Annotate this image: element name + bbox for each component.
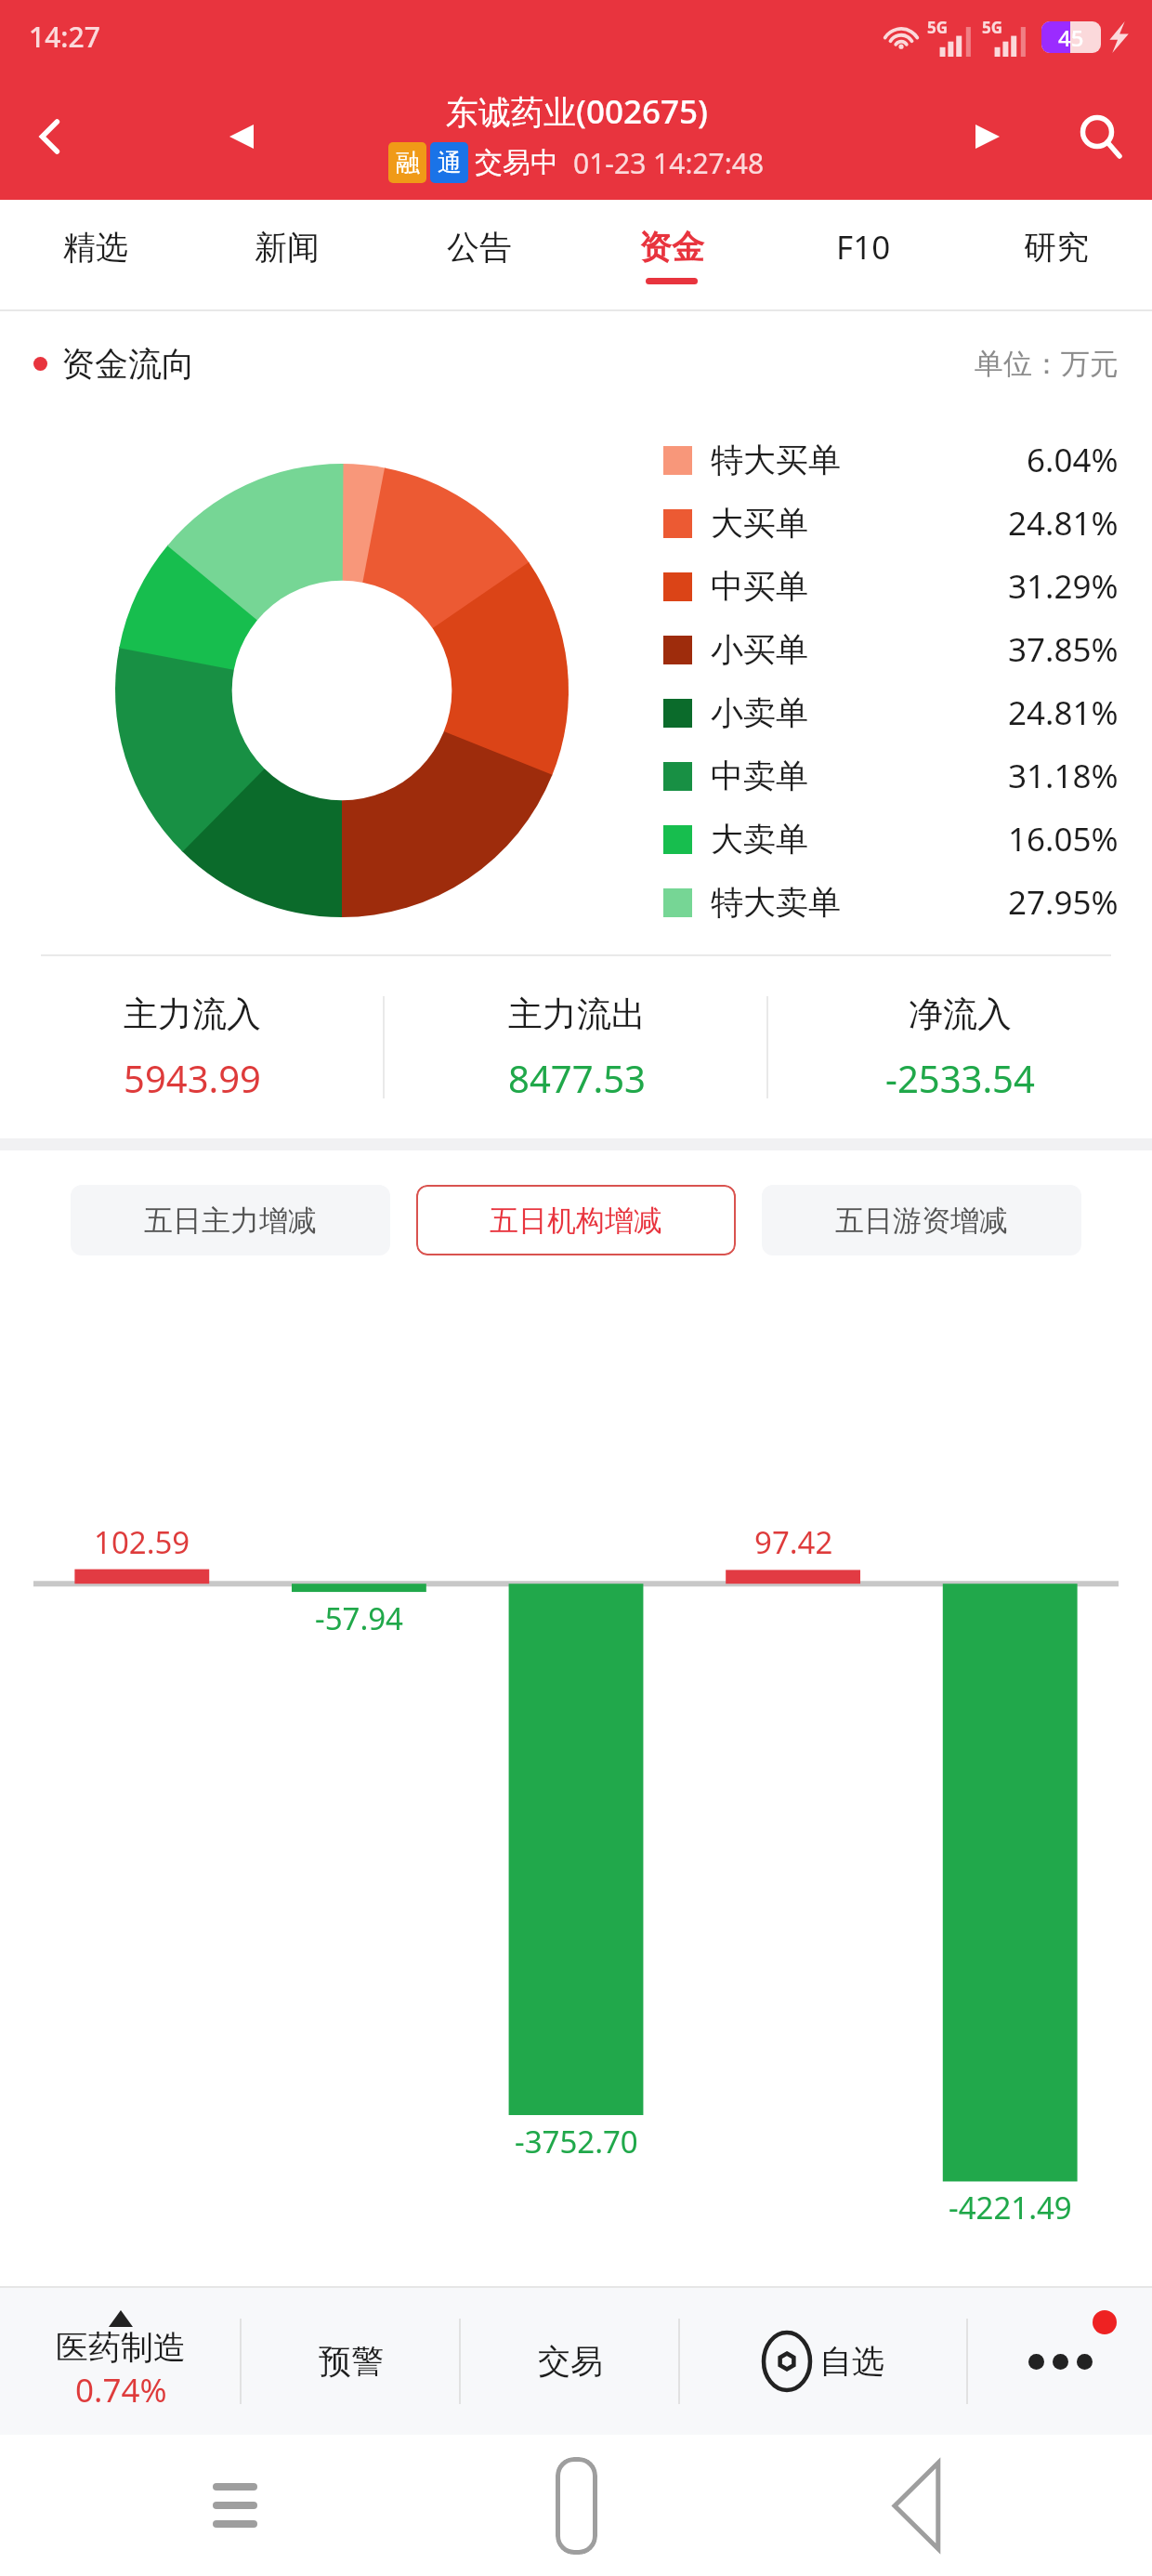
staticText: 五日机构增减 [490,1203,662,1239]
staticText: 医药制造 [56,2327,186,2368]
staticText: 97.42 [754,1521,833,1563]
staticText: 5G [927,17,949,38]
staticText: 24.81% [1008,690,1119,735]
staticText: 5943.99 [124,1053,261,1103]
staticText: 8477.53 [508,1053,646,1103]
staticText: 融 [396,148,420,178]
staticText: 预警 [319,2341,384,2382]
staticText: -2533.54 [885,1053,1035,1103]
staticText: 自选 [819,2341,884,2382]
staticText: 交易中 [475,145,558,180]
staticText: 31.29% [1008,564,1119,609]
button[interactable]: Back [866,2454,968,2556]
staticText: 资金流向 [61,343,195,385]
staticText: 16.05% [1008,817,1119,861]
staticText: 单位：万元 [975,346,1119,382]
staticText: 中买单 [711,566,808,607]
staticText: 31.18% [1008,754,1119,798]
staticText: 公告 [447,227,512,268]
staticText: 研究 [1024,227,1089,268]
staticText: 交易 [538,2341,603,2382]
button[interactable]: 五日游资增减 [762,1185,1081,1255]
button[interactable]: 交易 [461,2288,680,2435]
staticText: 小卖单 [711,692,808,733]
button[interactable]: 公告 [383,200,575,311]
staticText: 中卖单 [711,756,808,796]
staticText: 14:27 [29,18,100,56]
staticText: 小买单 [711,629,808,670]
staticText: 五日游资增减 [835,1203,1008,1239]
staticText: 01-23 14:27:48 [573,144,765,182]
staticText: F10 [836,225,891,269]
staticText: 特大卖单 [711,882,841,923]
button[interactable]: F10 [767,200,960,311]
staticText: -3752.70 [515,2121,638,2162]
button[interactable]: Next stock [955,104,1020,169]
button[interactable]: Previous stock [209,104,274,169]
button[interactable]: 预警 [242,2288,461,2435]
button[interactable]: Home [525,2454,627,2556]
staticText: 主力流出 [508,992,646,1036]
staticText: 新闻 [255,227,320,268]
staticText: 5G [982,17,1003,38]
button[interactable]: More [968,2288,1152,2435]
staticText: 37.85% [1008,627,1119,672]
staticText: 五日主力增减 [144,1203,317,1239]
staticText: 主力流入 [124,992,261,1036]
button[interactable]: 新闻 [191,200,383,311]
staticText: 资金 [639,227,704,268]
button[interactable]: 五日主力增减 [71,1185,390,1255]
staticText: 0.74% [75,2368,167,2412]
button[interactable]: Back [0,85,102,188]
staticText: 27.95% [1008,880,1119,925]
staticText: 净流入 [909,992,1012,1036]
staticText: 24.81% [1008,501,1119,545]
staticText: 102.59 [94,1521,190,1563]
staticText: -4221.49 [949,2187,1072,2228]
staticText: 特大买单 [711,440,841,480]
button[interactable]: 精选 [0,200,191,311]
button[interactable]: Search [1050,85,1152,188]
staticText: 大卖单 [711,819,808,860]
staticText: 45 [1058,22,1084,53]
staticText: 大买单 [711,503,808,544]
staticText: -57.94 [315,1597,403,1639]
button[interactable]: Recents [184,2454,286,2556]
button[interactable]: 五日机构增减 [416,1185,736,1255]
staticText: 精选 [63,227,128,268]
button[interactable]: 研究 [960,200,1152,311]
staticText: 通 [438,148,462,178]
button[interactable]: 医药制造 [0,2288,242,2435]
button[interactable]: 自选 [680,2288,968,2435]
button[interactable]: 资金 [575,200,767,311]
staticText: 东诚药业(002675) [446,89,708,134]
staticText: 6.04% [1027,438,1119,482]
